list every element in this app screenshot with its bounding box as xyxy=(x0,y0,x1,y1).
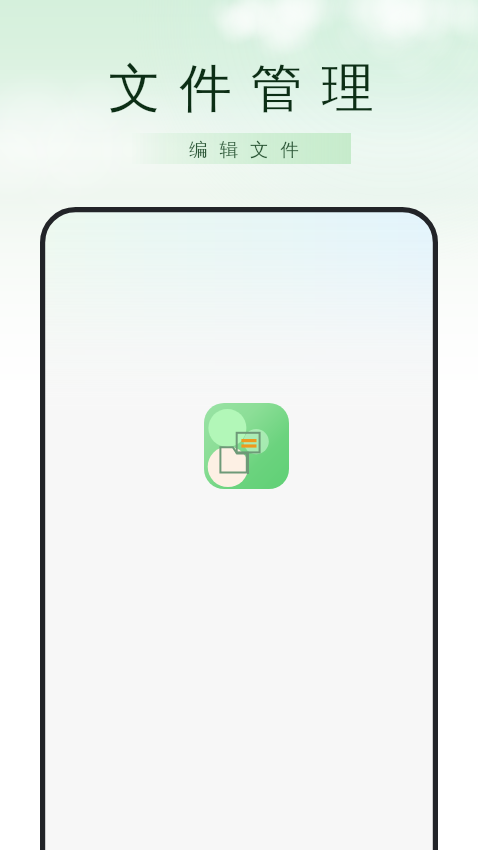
button[interactable]: 编辑文件 xyxy=(130,133,351,164)
staticText: 文件管理 xyxy=(99,56,383,122)
staticText: 编辑文件 xyxy=(183,138,305,161)
button[interactable]: 文件管理 App xyxy=(204,403,289,489)
